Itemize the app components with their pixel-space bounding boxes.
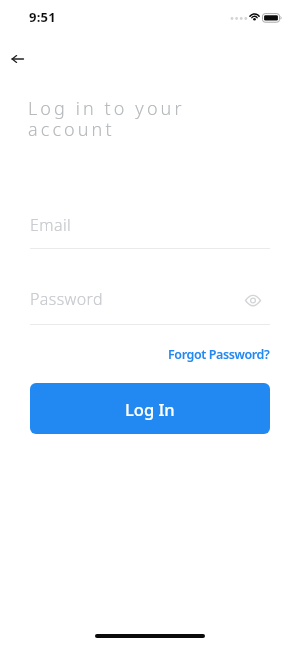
button[interactable]: Forgot Password? <box>168 346 270 363</box>
staticText: Forgot Password? <box>168 346 270 363</box>
staticText: Log In <box>125 398 175 420</box>
staticText: Email <box>30 214 72 236</box>
button[interactable]: Log In <box>30 383 270 434</box>
staticText: Password <box>30 288 103 310</box>
button[interactable]: Email <box>0 208 300 250</box>
staticText: 9:51 <box>29 8 56 26</box>
button[interactable]: Password <box>0 284 300 326</box>
button[interactable] <box>3 45 31 73</box>
staticText: Log in to your account <box>28 96 185 141</box>
button[interactable] <box>240 289 266 311</box>
